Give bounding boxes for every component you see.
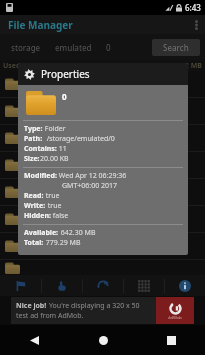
button[interactable]: Home — [69, 325, 137, 355]
staticText: emulated — [55, 42, 92, 53]
staticText: Available: 642.32 MB — [131, 61, 202, 71]
staticText: 0 — [62, 91, 67, 102]
staticText: You're displaying a 320 x 50 — [49, 301, 140, 311]
staticText: File Manager — [8, 18, 73, 32]
staticText: 779.29 MB — [44, 238, 81, 248]
button[interactable] — [0, 179, 205, 205]
button[interactable]: storage — [4, 37, 48, 57]
button[interactable]: New folder — [0, 275, 41, 296]
staticText: storage — [11, 42, 41, 53]
staticText: Used: 136.97 MB — [3, 61, 60, 71]
staticText: Total: — [24, 238, 44, 248]
staticText: Modified: — [24, 171, 57, 181]
button[interactable]: Apps — [124, 275, 164, 296]
staticText: Available: — [24, 228, 59, 238]
staticText: Nice job! — [16, 301, 49, 311]
button[interactable] — [0, 152, 205, 178]
button[interactable]: Recents — [137, 325, 205, 355]
staticText: Path: — [24, 134, 43, 144]
button[interactable]: 0 — [98, 37, 118, 57]
staticText: 0 — [106, 42, 111, 53]
staticText: Folder — [43, 124, 66, 134]
staticText: 6:43 — [185, 2, 201, 13]
button[interactable]: Search — [152, 39, 200, 56]
staticText: 20.00 KB — [40, 154, 69, 164]
staticText: Wed Apr 12 06:29:36 — [57, 171, 127, 181]
button[interactable]: Select — [42, 275, 82, 296]
staticText: true — [46, 201, 62, 211]
button[interactable]: AdMob — [156, 297, 194, 324]
staticText: Write: — [24, 201, 46, 211]
button[interactable]: More options — [187, 15, 205, 34]
button[interactable]: Refresh — [83, 275, 123, 296]
staticText: Search — [163, 42, 189, 53]
staticText: test ad from AdMob. — [16, 311, 84, 321]
button[interactable] — [0, 260, 205, 275]
button[interactable]: Info — [165, 275, 205, 296]
button[interactable] — [0, 71, 205, 97]
staticText: AdMob — [168, 315, 182, 320]
staticText: Contains: — [24, 144, 57, 154]
button[interactable] — [0, 206, 205, 232]
button[interactable]: emulated — [48, 37, 98, 57]
button[interactable]: Back — [0, 325, 69, 355]
staticText: Type: — [24, 124, 43, 134]
staticText: Read: — [24, 191, 44, 201]
staticText: Properties — [41, 67, 90, 81]
staticText: 11 — [57, 144, 67, 154]
staticText: 642.30 MB — [59, 228, 96, 238]
button[interactable] — [0, 233, 205, 259]
button[interactable]: Nice job! — [11, 297, 156, 324]
button[interactable] — [0, 125, 205, 151]
staticText: /storage/emulated/0 — [43, 134, 115, 144]
staticText: GMT+06:00 2017 — [62, 181, 118, 191]
button[interactable] — [0, 98, 205, 124]
staticText: Hidden: — [24, 211, 51, 221]
staticText: true — [44, 191, 60, 201]
staticText: false — [51, 211, 69, 221]
staticText: Size: — [24, 154, 40, 164]
